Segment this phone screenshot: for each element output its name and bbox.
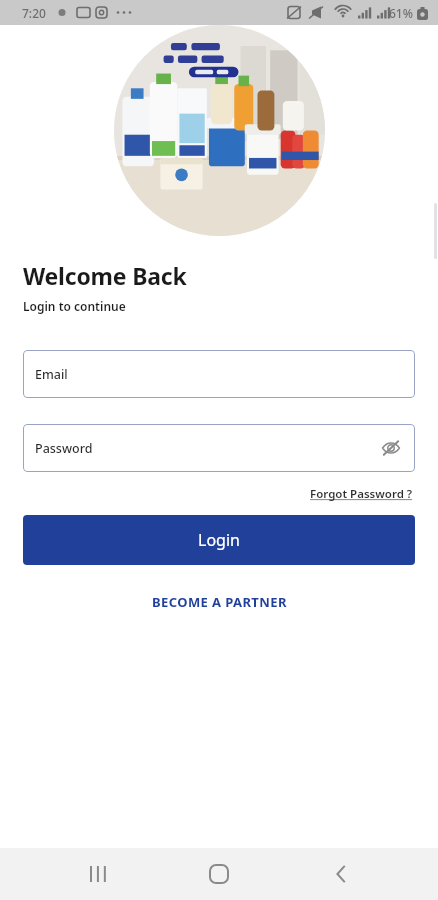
staticText: Welcome Back <box>23 260 187 291</box>
staticText: 7:20 <box>22 5 46 21</box>
staticText: BECOME A PARTNER <box>152 593 287 611</box>
staticText: Email <box>35 366 68 383</box>
button[interactable]: Email <box>23 350 415 398</box>
staticText: Password <box>35 440 93 457</box>
button[interactable]: Recents <box>74 850 122 898</box>
staticText: Login <box>198 529 240 551</box>
button[interactable]: Home <box>195 850 243 898</box>
staticText: Forgot Password ? <box>310 486 413 502</box>
button[interactable]: Forgot Password ? <box>308 484 415 504</box>
button[interactable]: Back <box>317 850 365 898</box>
button[interactable]: Password <box>23 424 415 472</box>
button[interactable]: BECOME A PARTNER <box>144 589 295 615</box>
button[interactable]: Login <box>23 515 415 565</box>
staticText: 61% <box>389 5 413 21</box>
button[interactable]: Show password <box>379 436 403 460</box>
staticText: Login to continue <box>23 298 126 314</box>
